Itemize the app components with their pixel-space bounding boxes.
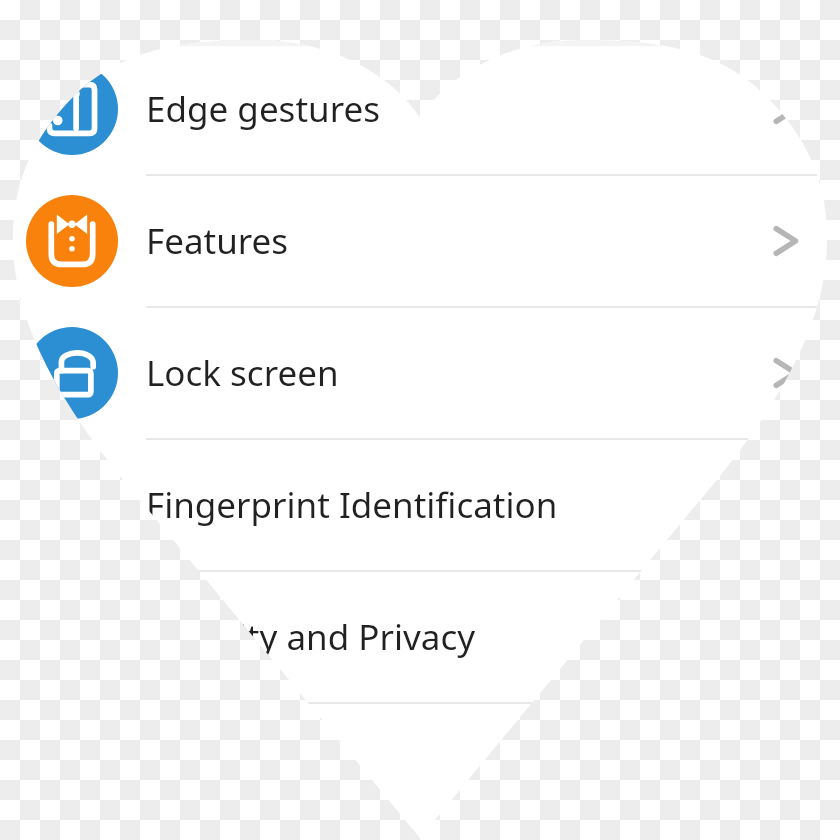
staticText: Features — [146, 217, 730, 265]
staticText: Security and Privacy — [146, 613, 730, 661]
other: Edge gestures — [763, 87, 807, 131]
button[interactable]: Security and Privacy — [0, 572, 840, 702]
staticText: Fingerprint Identification — [146, 481, 730, 529]
staticText: Edge gestures — [146, 85, 730, 133]
staticText: Lock screen — [146, 349, 730, 397]
button[interactable]: Fingerprint Identification — [0, 440, 840, 570]
other: Features — [763, 219, 807, 263]
button[interactable]: Edge gestures — [0, 44, 840, 174]
other: Lock screen — [763, 351, 807, 395]
button[interactable]: Features — [0, 176, 840, 306]
button[interactable]: Lock screen — [0, 308, 840, 438]
